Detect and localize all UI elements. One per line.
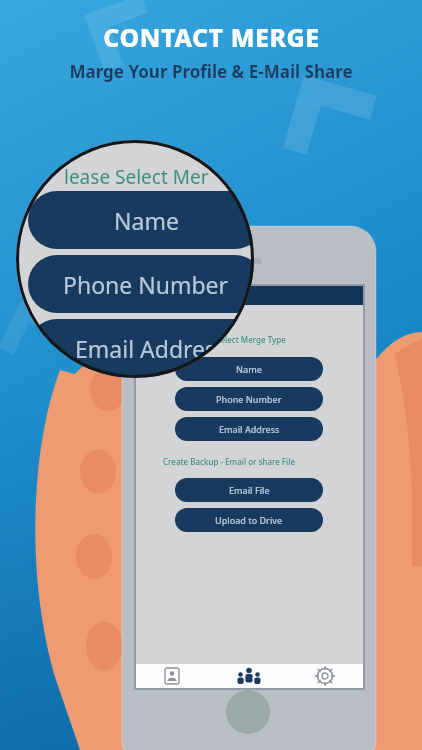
button[interactable]: Email File <box>175 478 323 502</box>
button[interactable]: Email Address <box>175 417 323 441</box>
button[interactable]: Email Addres <box>28 319 254 377</box>
button[interactable]: Name <box>175 357 323 381</box>
button[interactable]: Home <box>226 690 270 734</box>
button[interactable]: Name <box>28 191 254 249</box>
button[interactable]: Phone Number <box>175 387 323 411</box>
staticText: Email Address <box>219 423 280 435</box>
staticText: Name <box>236 363 262 375</box>
staticText: lease Select Mer <box>64 164 209 190</box>
button[interactable]: Merge <box>227 664 271 688</box>
staticText: Create Backup - Email or share File <box>163 456 295 467</box>
staticText: CONTACT MERGE <box>103 20 320 54</box>
staticText: Marge Your Profile & E-Mail Share <box>69 60 353 83</box>
staticText: Phone Number <box>63 269 229 300</box>
staticText: Email File <box>229 484 270 496</box>
button[interactable]: Contacts <box>150 664 194 688</box>
staticText: Phone Number <box>216 393 282 405</box>
staticText: Upload to Drive <box>215 514 283 526</box>
button[interactable]: Upload to Drive <box>175 508 323 532</box>
staticText: Name <box>114 205 179 236</box>
button[interactable]: Manager <box>136 286 363 305</box>
staticText: Manager <box>214 291 245 301</box>
button[interactable]: Settings <box>303 664 347 688</box>
staticText: Select Merge Type <box>216 334 286 345</box>
button[interactable]: Phone Number <box>28 255 254 313</box>
staticText: Email Addres <box>75 333 217 364</box>
